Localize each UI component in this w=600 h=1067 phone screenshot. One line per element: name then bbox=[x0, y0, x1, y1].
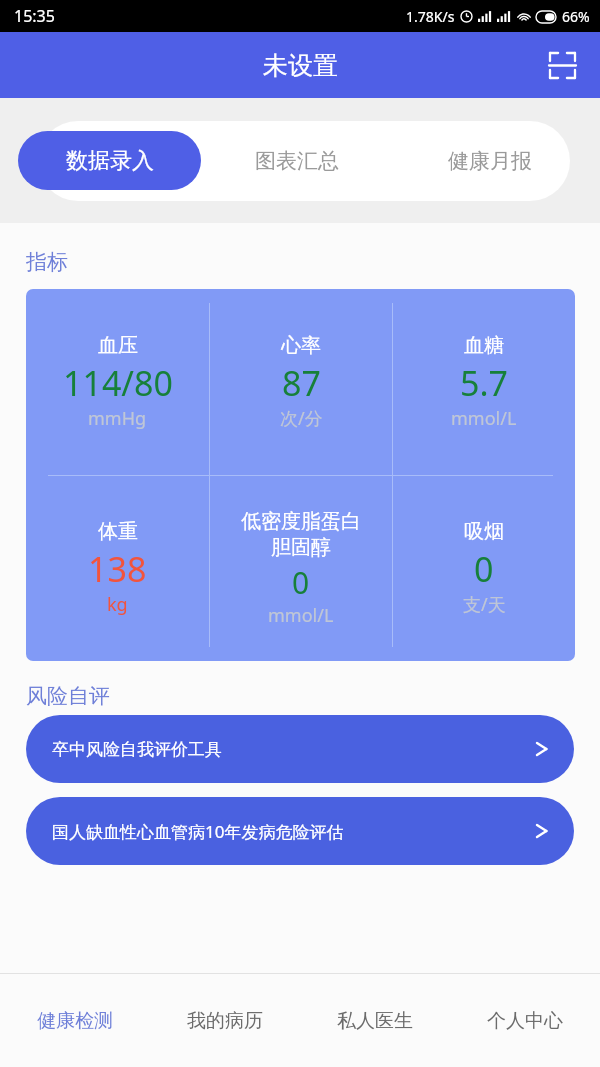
staticText: 图表汇总 bbox=[255, 148, 339, 174]
staticText: 我的病历 bbox=[187, 1009, 263, 1033]
staticText: 健康检测 bbox=[37, 1009, 113, 1033]
staticText: 114/80 bbox=[63, 360, 173, 406]
staticText: 卒中风险自我评价工具 bbox=[52, 739, 222, 760]
button[interactable]: 卒中风险自我评价工具 bbox=[26, 715, 574, 783]
button[interactable]: 数据录入 bbox=[18, 131, 201, 190]
staticText: 87 bbox=[282, 360, 321, 406]
button[interactable]: 健康检测 bbox=[0, 974, 150, 1067]
staticText: 低密度脂蛋白 胆固醇 bbox=[241, 509, 361, 560]
staticText: 138 bbox=[88, 546, 147, 592]
staticText: mmol/L bbox=[451, 406, 517, 431]
button[interactable]: 吸烟 bbox=[393, 475, 575, 661]
button[interactable]: 血糖 bbox=[393, 289, 575, 475]
staticText: 个人中心 bbox=[487, 1009, 563, 1033]
staticText: 支/天 bbox=[463, 592, 506, 617]
staticText: 1.78K/s bbox=[406, 7, 455, 26]
staticText: 心率 bbox=[281, 333, 321, 358]
button[interactable]: 图表汇总 bbox=[201, 131, 393, 190]
staticText: 0 bbox=[292, 562, 310, 603]
staticText: 血糖 bbox=[464, 333, 504, 358]
staticText: mmol/L bbox=[268, 603, 334, 628]
button[interactable]: 个人中心 bbox=[450, 974, 600, 1067]
button[interactable]: 健康月报 bbox=[393, 131, 586, 190]
button[interactable]: 私人医生 bbox=[300, 974, 450, 1067]
staticText: 5.7 bbox=[460, 360, 509, 406]
button[interactable]: 血压 bbox=[26, 289, 209, 475]
staticText: 健康月报 bbox=[448, 148, 532, 174]
staticText: 国人缺血性心血管病10年发病危险评估 bbox=[52, 820, 344, 843]
staticText: 次/分 bbox=[280, 406, 323, 431]
button[interactable]: 国人缺血性心血管病10年发病危险评估 bbox=[26, 797, 574, 865]
staticText: 0 bbox=[474, 546, 494, 592]
staticText: 未设置 bbox=[263, 50, 338, 81]
staticText: 吸烟 bbox=[464, 519, 504, 544]
staticText: 66% bbox=[562, 7, 590, 26]
staticText: kg bbox=[107, 592, 128, 617]
staticText: 指标 bbox=[26, 249, 68, 275]
staticText: mmHg bbox=[88, 406, 147, 431]
button[interactable]: 心率 bbox=[210, 289, 392, 475]
staticText: 数据录入 bbox=[66, 147, 154, 175]
staticText: 私人医生 bbox=[337, 1009, 413, 1033]
button[interactable]: 扫一扫 bbox=[542, 45, 582, 85]
button[interactable]: 我的病历 bbox=[150, 974, 300, 1067]
staticText: 风险自评 bbox=[26, 683, 110, 709]
button[interactable]: 体重 bbox=[26, 475, 209, 661]
staticText: 15:35 bbox=[14, 5, 55, 27]
button[interactable]: 低密度脂蛋白 胆固醇 bbox=[210, 475, 392, 661]
staticText: 血压 bbox=[98, 333, 138, 358]
staticText: 体重 bbox=[98, 519, 138, 544]
